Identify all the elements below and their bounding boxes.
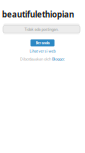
staticText: Tidak ada postingan. <box>24 27 58 32</box>
staticText: beautifulethiopian <box>2 9 74 20</box>
button[interactable]: Lihat versi web <box>0 48 85 53</box>
button[interactable]: Blogger. <box>52 56 65 62</box>
staticText: Lihat versi web <box>29 48 55 53</box>
staticText: Beranda <box>35 40 49 45</box>
staticText: Diberdayakan oleh <box>20 56 51 62</box>
staticText: Blogger. <box>52 56 65 62</box>
button[interactable]: Beranda <box>30 39 54 46</box>
